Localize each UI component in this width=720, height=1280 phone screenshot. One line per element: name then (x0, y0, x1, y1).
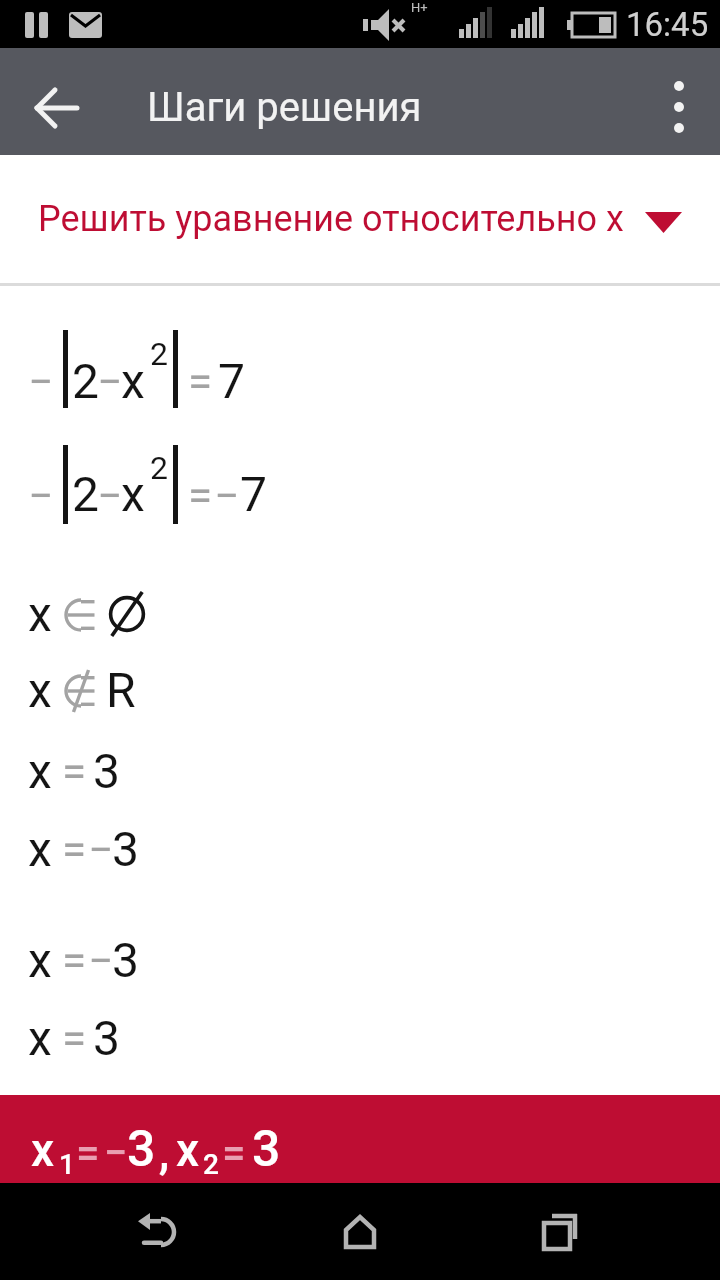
button[interactable]: x (0, 1095, 720, 1183)
staticText: 3 (127, 1120, 156, 1179)
staticText: x (176, 1123, 200, 1177)
staticText: − (88, 935, 114, 987)
staticText: = (76, 1128, 100, 1177)
staticText: H+ (411, 0, 428, 15)
staticText: − (214, 470, 240, 522)
staticText: − (88, 824, 114, 876)
staticText: , (159, 1125, 170, 1179)
staticText: 2 (150, 335, 168, 373)
staticText: 2 (72, 353, 99, 409)
staticText: Шаги решения (147, 84, 422, 131)
staticText: = (62, 1013, 87, 1065)
staticText: − (104, 1128, 128, 1177)
staticText: = (62, 935, 87, 987)
staticText: x (28, 586, 52, 642)
button[interactable] (20, 71, 94, 145)
button[interactable] (520, 1191, 600, 1271)
staticText: = (62, 746, 87, 798)
staticText: 3 (112, 821, 139, 877)
button[interactable] (320, 1191, 400, 1271)
staticText: x (28, 1010, 52, 1066)
staticText: 1 (59, 1148, 75, 1181)
staticText: x (28, 932, 52, 988)
staticText: 2 (72, 466, 99, 522)
staticText: − (97, 470, 123, 522)
staticText: 3 (252, 1120, 281, 1179)
staticText: R (106, 662, 136, 718)
button[interactable] (0, 185, 720, 257)
staticText: 2 (150, 449, 168, 487)
staticText: x (31, 1123, 55, 1177)
staticText: − (28, 470, 54, 522)
button[interactable] (120, 1191, 200, 1271)
staticText: − (97, 356, 123, 408)
staticText: − (28, 356, 54, 408)
staticText: = (188, 470, 213, 522)
staticText: = (188, 356, 213, 408)
staticText: x (28, 662, 52, 718)
staticText: 16:45 (626, 5, 709, 44)
staticText: x (28, 821, 52, 877)
staticText: 7 (218, 353, 245, 409)
button[interactable] (650, 96, 708, 154)
staticText: = (222, 1128, 246, 1177)
staticText: Решить уравнение относительно x (38, 198, 624, 240)
staticText: x (28, 743, 52, 799)
staticText: 3 (93, 743, 120, 799)
staticText: 7 (240, 466, 267, 522)
staticText: = (62, 824, 87, 876)
staticText: x (121, 353, 145, 409)
staticText: 2 (203, 1148, 219, 1181)
staticText: 3 (93, 1010, 120, 1066)
staticText: x (121, 466, 145, 522)
staticText: 3 (112, 932, 139, 988)
